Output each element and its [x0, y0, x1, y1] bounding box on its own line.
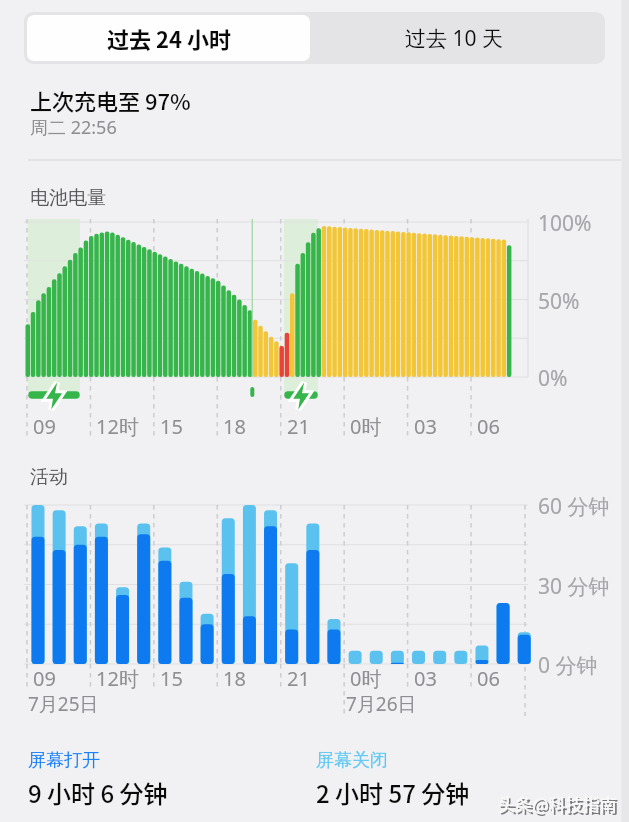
staticText: 0时: [350, 665, 382, 692]
staticText: 活动: [30, 465, 68, 489]
button[interactable]: 过去 24 小时: [27, 15, 310, 61]
staticText: 屏幕打开: [28, 749, 100, 772]
staticText: 21: [287, 413, 310, 440]
staticText: 09: [33, 413, 56, 440]
staticText: 屏幕关闭: [316, 749, 388, 772]
staticText: 100%: [538, 209, 592, 238]
staticText: 0%: [538, 364, 568, 393]
staticText: 60 分钟: [538, 492, 610, 521]
staticText: 过去 24 小时: [107, 22, 231, 54]
staticText: 15: [160, 413, 183, 440]
staticText: 09: [33, 665, 56, 692]
staticText: 15: [160, 665, 183, 692]
staticText: 12时: [96, 665, 139, 692]
staticText: 06: [477, 665, 500, 692]
staticText: 18: [223, 665, 246, 692]
staticText: 50%: [538, 287, 580, 316]
button[interactable]: 过去 10 天: [314, 12, 594, 64]
staticText: 7月26日: [346, 691, 417, 717]
staticText: 2 小时 57 分钟: [316, 775, 470, 810]
staticText: 18: [223, 413, 246, 440]
staticText: 7月25日: [28, 691, 99, 717]
staticText: 21: [287, 665, 310, 692]
staticText: 06: [477, 413, 500, 440]
staticText: 12时: [96, 413, 139, 440]
staticText: 上次充电至 97%: [30, 84, 191, 116]
staticText: 0 分钟: [538, 651, 598, 680]
staticText: 0时: [350, 413, 382, 440]
staticText: 周二 22:56: [30, 115, 117, 140]
staticText: 9 小时 6 分钟: [28, 775, 168, 810]
staticText: 03: [414, 665, 437, 692]
staticText: 电池电量: [30, 186, 106, 210]
staticText: 03: [414, 413, 437, 440]
staticText: 头条@科技指南: [500, 793, 619, 818]
staticText: 30 分钟: [538, 572, 610, 601]
staticText: 头条@科技指南: [498, 791, 617, 816]
staticText: 过去 10 天: [405, 24, 503, 53]
